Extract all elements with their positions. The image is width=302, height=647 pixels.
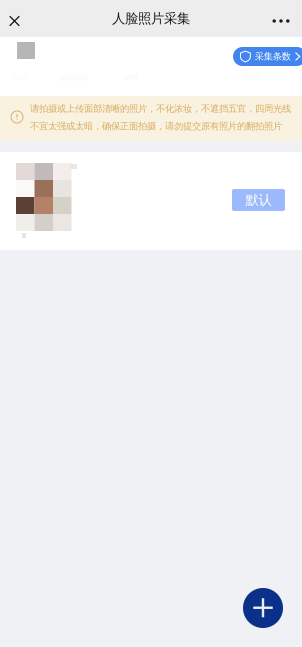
staticText: 默认 xyxy=(245,192,271,208)
staticText: 采集条数 xyxy=(255,51,291,62)
button[interactable]: Add photo xyxy=(243,588,283,628)
staticText: 请拍摄或上传面部清晰的照片，不化浓妆，不遮挡五官，四周光线不宜太强或太暗，确保正… xyxy=(30,103,291,132)
staticText: 人脸照片采集 xyxy=(112,10,190,27)
button[interactable]: 默认 xyxy=(232,189,285,211)
button[interactable]: Close xyxy=(0,3,29,39)
button[interactable]: 采集条数 xyxy=(233,47,302,66)
button[interactable]: More options xyxy=(265,3,297,39)
